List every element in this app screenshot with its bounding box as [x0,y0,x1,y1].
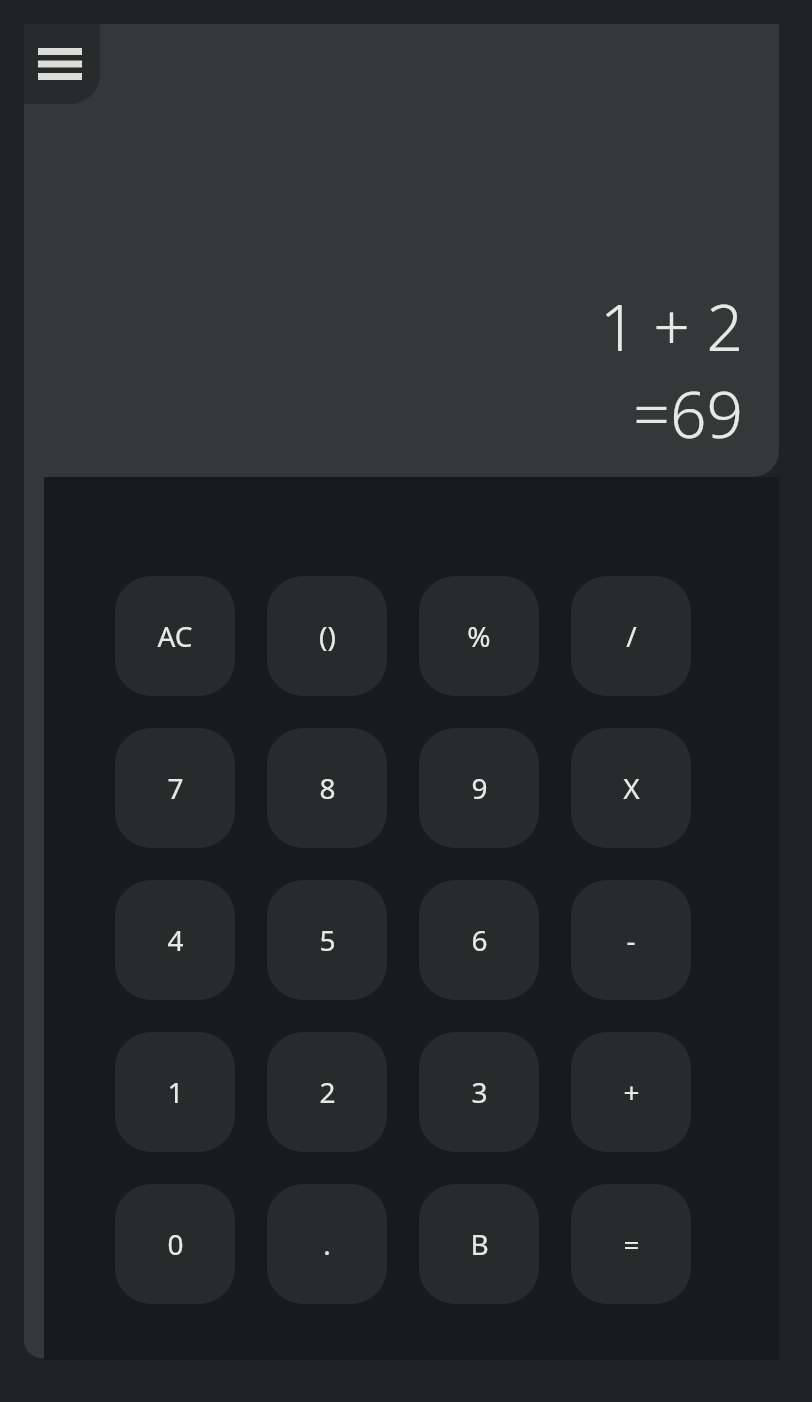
button[interactable]: Menu [24,24,100,104]
button[interactable]: 0 [115,1184,235,1304]
button[interactable]: 3 [419,1032,539,1152]
button[interactable]: - [571,880,691,1000]
staticText: =69 [633,370,743,457]
button[interactable]: 2 [267,1032,387,1152]
button[interactable]: . [267,1184,387,1304]
button[interactable]: 7 [115,728,235,848]
staticText: . [323,1225,331,1263]
staticText: + [623,1073,640,1111]
button[interactable]: + [571,1032,691,1152]
staticText: 0 [167,1225,184,1263]
staticText: () [319,617,336,655]
staticText: X [623,769,640,807]
staticText: = [623,1225,640,1263]
button[interactable]: 9 [419,728,539,848]
button[interactable]: / [571,576,691,696]
button[interactable]: = [571,1184,691,1304]
staticText: 7 [167,769,184,807]
staticText: 2 [319,1073,336,1111]
staticText: 1 + 2 [600,283,743,370]
button[interactable]: () [267,576,387,696]
staticText: % [467,617,491,655]
button[interactable]: 1 [115,1032,235,1152]
staticText: 3 [471,1073,488,1111]
button[interactable]: X [571,728,691,848]
button[interactable]: 6 [419,880,539,1000]
staticText: 4 [167,921,184,959]
staticText: AC [157,617,193,655]
staticText: B [470,1225,489,1263]
staticText: - [626,921,636,959]
staticText: / [626,617,637,655]
button[interactable]: 4 [115,880,235,1000]
button[interactable]: AC [115,576,235,696]
staticText: 1 [167,1073,184,1111]
staticText: 9 [471,769,488,807]
button[interactable]: 8 [267,728,387,848]
button[interactable]: 5 [267,880,387,1000]
staticText: 8 [319,769,336,807]
staticText: 5 [319,921,336,959]
button[interactable]: % [419,576,539,696]
button[interactable]: B [419,1184,539,1304]
staticText: 6 [471,921,488,959]
